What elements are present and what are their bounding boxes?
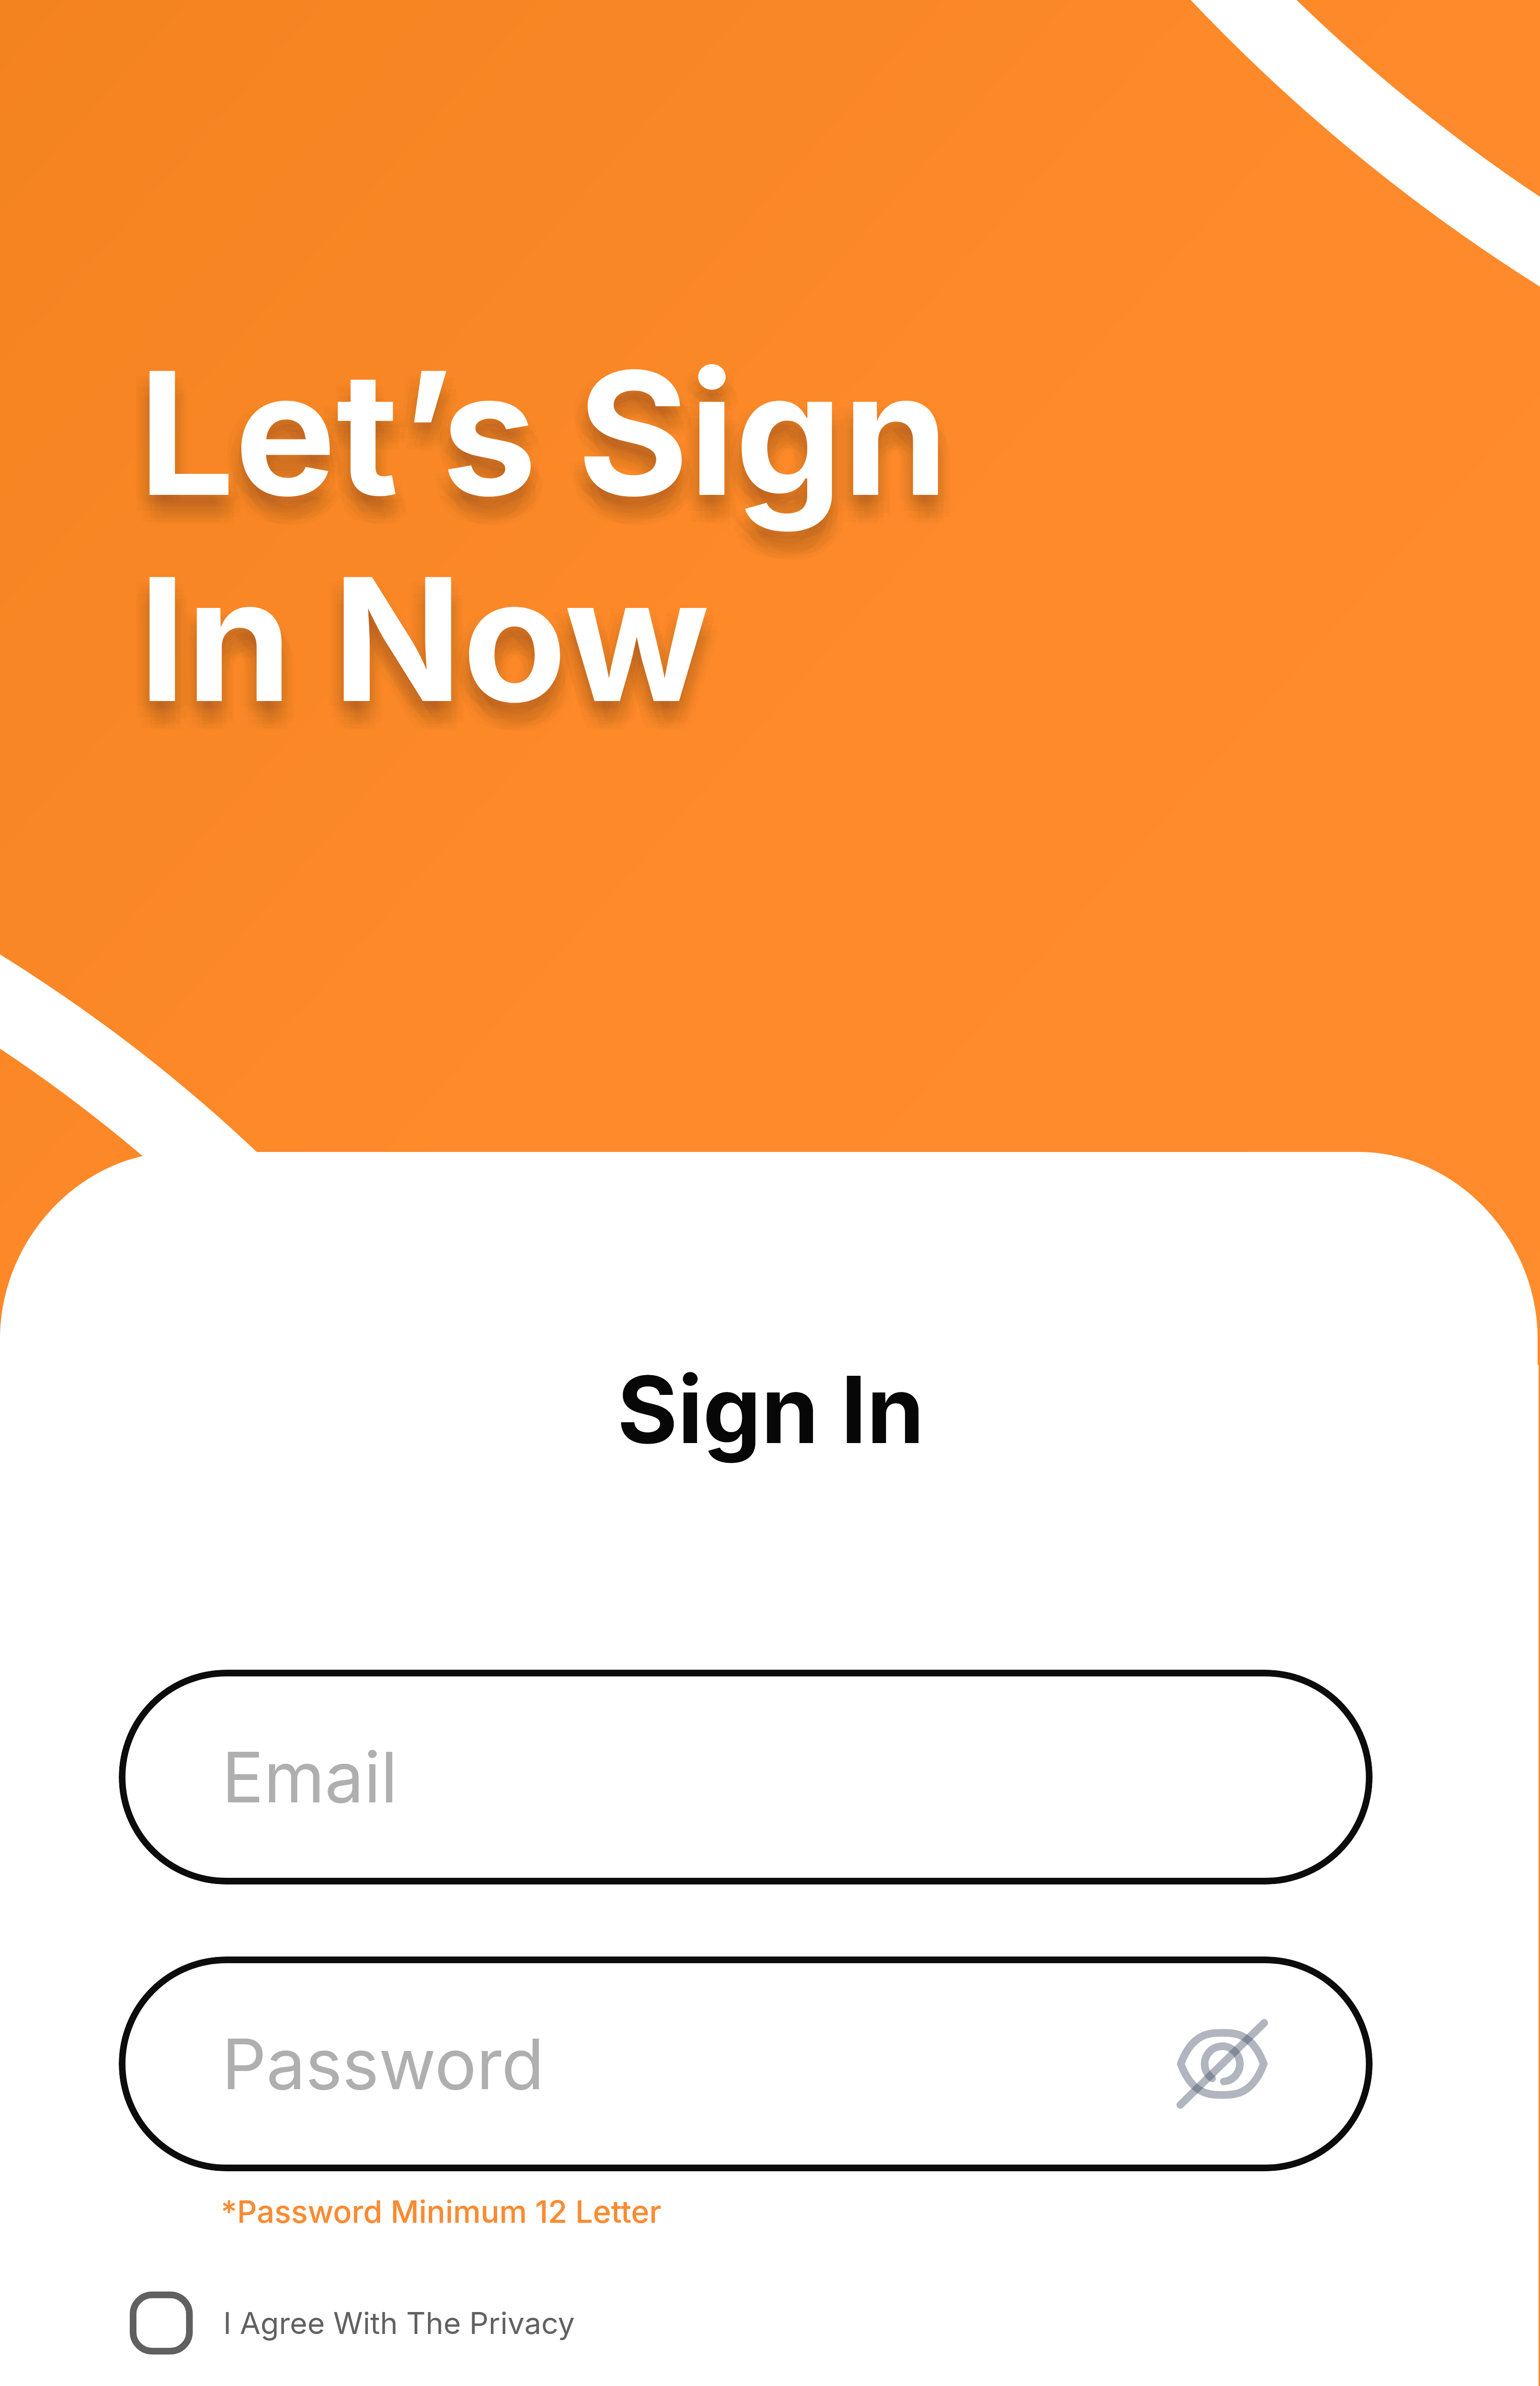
staticText: I Agree With The Privacy <box>223 2305 575 2341</box>
staticText: *Password Minimum 12 Letter <box>221 2193 662 2230</box>
staticText: In Now <box>124 541 695 747</box>
button[interactable]: I Agree With The Privacy <box>130 2280 544 2366</box>
staticText: Let’s Sign <box>124 335 935 541</box>
staticText: In Now <box>138 536 709 742</box>
staticText: In Now <box>138 564 709 770</box>
button[interactable]: Password <box>119 1957 1373 2171</box>
staticText: Let’s Sign <box>138 330 949 536</box>
staticText: Let’s Sign <box>139 350 950 556</box>
staticText: In Now <box>143 560 714 766</box>
staticText: In Now <box>128 544 699 751</box>
staticText: Let’s Sign <box>126 346 936 552</box>
staticText: Let’s Sign <box>145 342 956 548</box>
staticText: Let’s Sign <box>130 356 940 563</box>
staticText: In Now <box>139 556 710 762</box>
staticText: Let’s Sign <box>135 346 946 552</box>
staticText: Let’s Sign <box>149 348 959 554</box>
staticText: Let’s Sign <box>135 336 946 543</box>
staticText: Let’s Sign <box>141 338 952 544</box>
staticText: In Now <box>126 552 697 758</box>
staticText: In Now <box>137 546 708 753</box>
staticText: In Now <box>141 544 712 751</box>
staticText: Password <box>222 2022 544 2106</box>
button[interactable]: Show password <box>1175 2016 1270 2112</box>
staticText: In Now <box>149 554 720 760</box>
staticText: Sign In <box>2 1353 1538 1465</box>
staticText: In Now <box>145 548 716 754</box>
staticText: Let’s Sign <box>132 342 942 548</box>
staticText: In Now <box>144 565 715 771</box>
staticText: Let’s Sign <box>138 357 949 564</box>
staticText: Let’s Sign <box>134 353 944 559</box>
staticText: In Now <box>130 563 701 769</box>
staticText: In Now <box>135 543 707 749</box>
button[interactable]: Email <box>119 1670 1373 1884</box>
staticText: Let’s Sign <box>137 340 948 546</box>
staticText: Let’s Sign <box>151 352 961 558</box>
staticText: In Now <box>134 559 705 765</box>
staticText: Let’s Sign <box>147 336 957 543</box>
staticText: Let’s Sign <box>144 358 955 565</box>
staticText: In Now <box>135 552 707 758</box>
staticText: Let’s Sign <box>128 338 938 544</box>
staticText: In Now <box>147 543 718 749</box>
staticText: Let’s Sign <box>143 354 954 560</box>
staticText: In Now <box>151 558 722 764</box>
staticText: In Now <box>132 548 703 754</box>
staticText: Email <box>222 1735 398 1820</box>
